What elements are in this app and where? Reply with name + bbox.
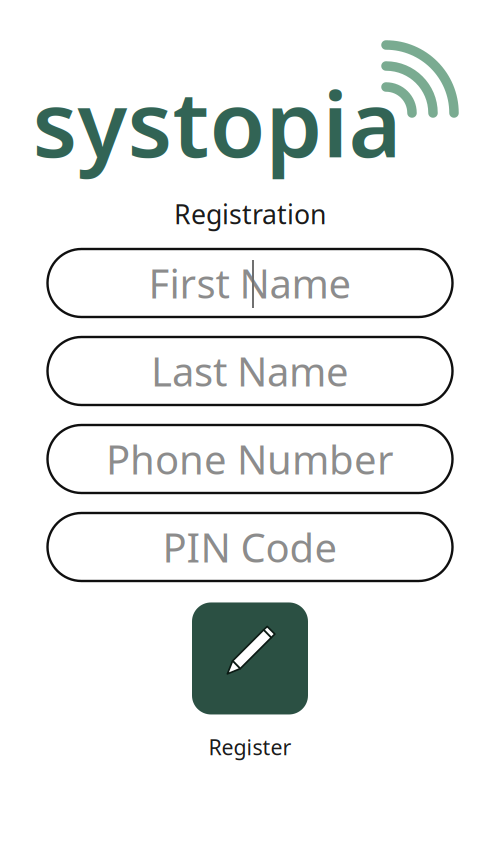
button[interactable]: Register	[192, 602, 308, 762]
staticText: PIN Code	[162, 520, 337, 574]
button[interactable]: PIN Code	[47, 513, 452, 581]
staticText: Register	[208, 732, 291, 762]
staticText: First Name	[148, 256, 351, 310]
button[interactable]: First Name	[47, 249, 452, 317]
staticText: Phone Number	[106, 432, 394, 486]
staticText: systopia	[32, 60, 401, 184]
staticText: Last Name	[151, 344, 349, 398]
staticText: Registration	[174, 196, 326, 232]
button[interactable]: Phone Number	[47, 425, 452, 493]
button[interactable]: Last Name	[47, 337, 452, 405]
